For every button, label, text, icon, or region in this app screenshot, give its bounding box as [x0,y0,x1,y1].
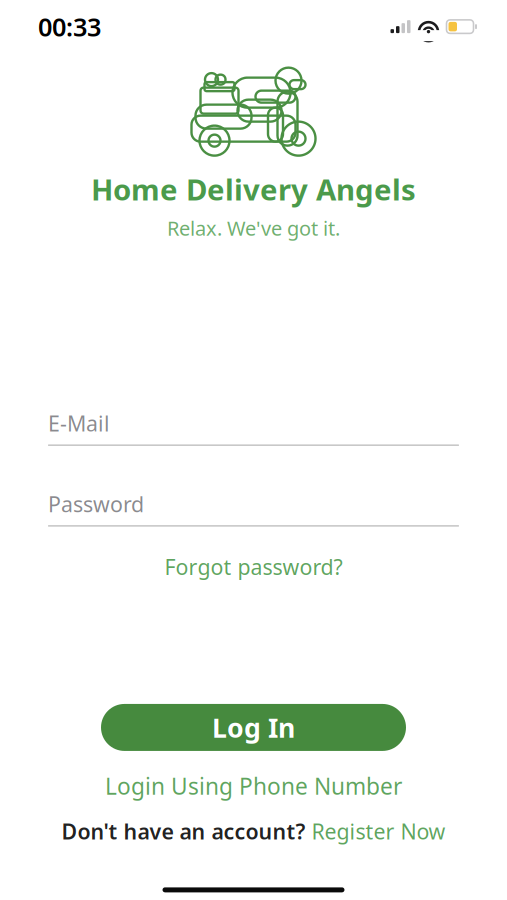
button[interactable]: Login Using Phone Number [0,763,507,809]
staticText: Register Now [311,817,445,845]
staticText: Don't have an account? [61,817,311,845]
button[interactable]: Forgot password? [48,544,459,590]
staticText: Forgot password? [164,553,342,581]
staticText: 00:33 [38,10,101,43]
staticText: Log In [212,710,295,745]
staticText: Login Using Phone Number [105,771,402,801]
button[interactable]: Log In [101,704,406,751]
staticText: Password [48,490,144,518]
staticText: Relax. We've got it. [167,215,340,241]
staticText: E-Mail [48,409,110,437]
staticText: Home Delivery Angels [91,170,416,209]
button[interactable]: Register Now [311,817,445,845]
